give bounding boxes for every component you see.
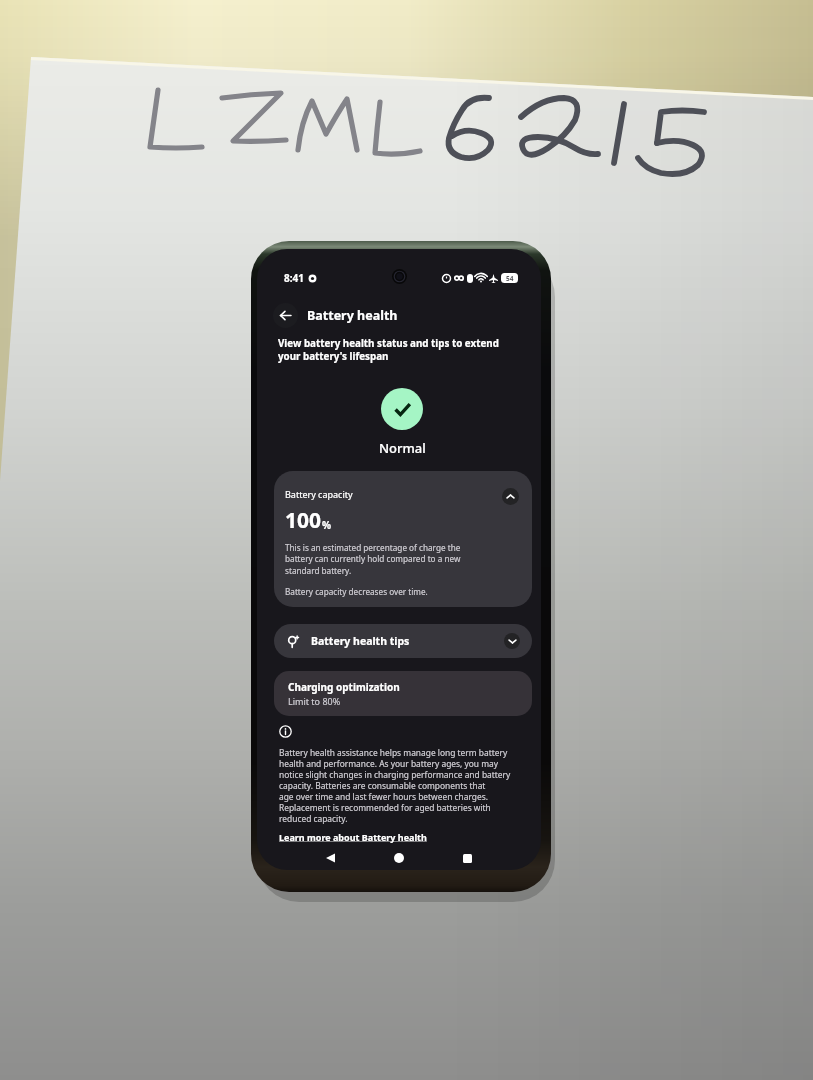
button[interactable]: Recents <box>455 846 479 870</box>
staticText: Battery capacity decreases over time. <box>285 586 428 597</box>
staticText: Battery capacity <box>285 488 353 500</box>
button[interactable]: Battery capacity <box>274 471 532 607</box>
button[interactable]: Home <box>387 846 411 870</box>
staticText: Charging optimization <box>288 680 400 694</box>
button[interactable]: Battery health tips <box>274 624 532 658</box>
staticText: This is an estimated percentage of charg… <box>285 542 461 577</box>
staticText: Battery health <box>307 307 398 324</box>
staticText: Limit to 80% <box>288 695 341 707</box>
button[interactable]: Back <box>319 846 343 870</box>
staticText: Battery health assistance helps manage l… <box>279 747 511 824</box>
staticText: % <box>322 518 332 532</box>
staticText: View battery health status and tips to e… <box>278 337 499 363</box>
staticText: 54 <box>506 274 514 283</box>
staticText: 100 <box>285 506 322 535</box>
button[interactable]: Collapse <box>502 488 519 505</box>
button[interactable]: Learn more about Battery health <box>279 831 427 843</box>
staticText: 8:41 <box>284 271 304 285</box>
staticText: Normal <box>379 439 426 457</box>
staticText: Battery health tips <box>311 634 410 648</box>
button[interactable]: Charging optimization <box>274 671 532 716</box>
button[interactable]: Back <box>273 303 298 328</box>
